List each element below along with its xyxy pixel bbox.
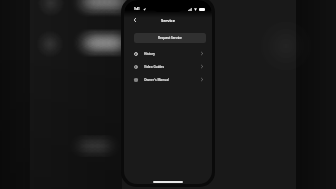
- staticText: Video Guides: [144, 65, 164, 69]
- staticText: Service: [161, 18, 175, 23]
- button[interactable]: History: [124, 47, 212, 60]
- staticText: 9:41: [134, 7, 140, 11]
- staticText: History: [144, 52, 155, 56]
- staticText: Request Service: [158, 36, 182, 40]
- button[interactable]: Video Guides: [124, 60, 212, 73]
- button[interactable]: Back: [130, 15, 139, 25]
- button[interactable]: Owner's Manual: [124, 73, 212, 86]
- button[interactable]: Request Service: [134, 33, 206, 43]
- staticText: Owner's Manual: [144, 78, 169, 82]
